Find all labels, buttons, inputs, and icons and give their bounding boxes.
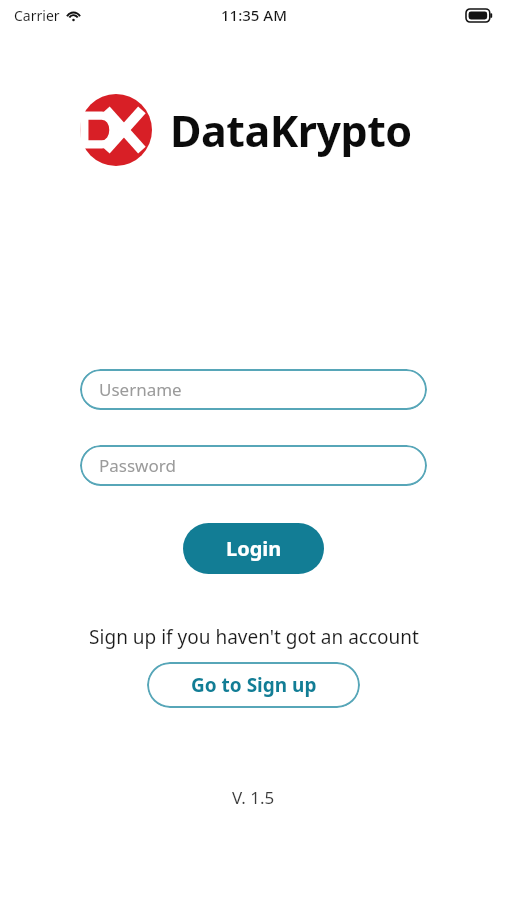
staticText: Login [226, 535, 282, 562]
button[interactable]: Go to Sign up [147, 662, 360, 708]
staticText: DataKrypto [170, 101, 412, 160]
staticText: Carrier [14, 6, 60, 25]
button[interactable]: Username [80, 369, 427, 410]
button[interactable]: Password [80, 445, 427, 486]
staticText: Password [99, 454, 176, 477]
staticText: 11:35 AM [221, 5, 287, 25]
staticText: Username [99, 378, 182, 401]
staticText: Go to Sign up [191, 672, 317, 698]
staticText: V. 1.5 [232, 786, 275, 809]
button[interactable]: Login [183, 523, 324, 574]
staticText: Sign up if you haven't got an account [89, 624, 419, 650]
